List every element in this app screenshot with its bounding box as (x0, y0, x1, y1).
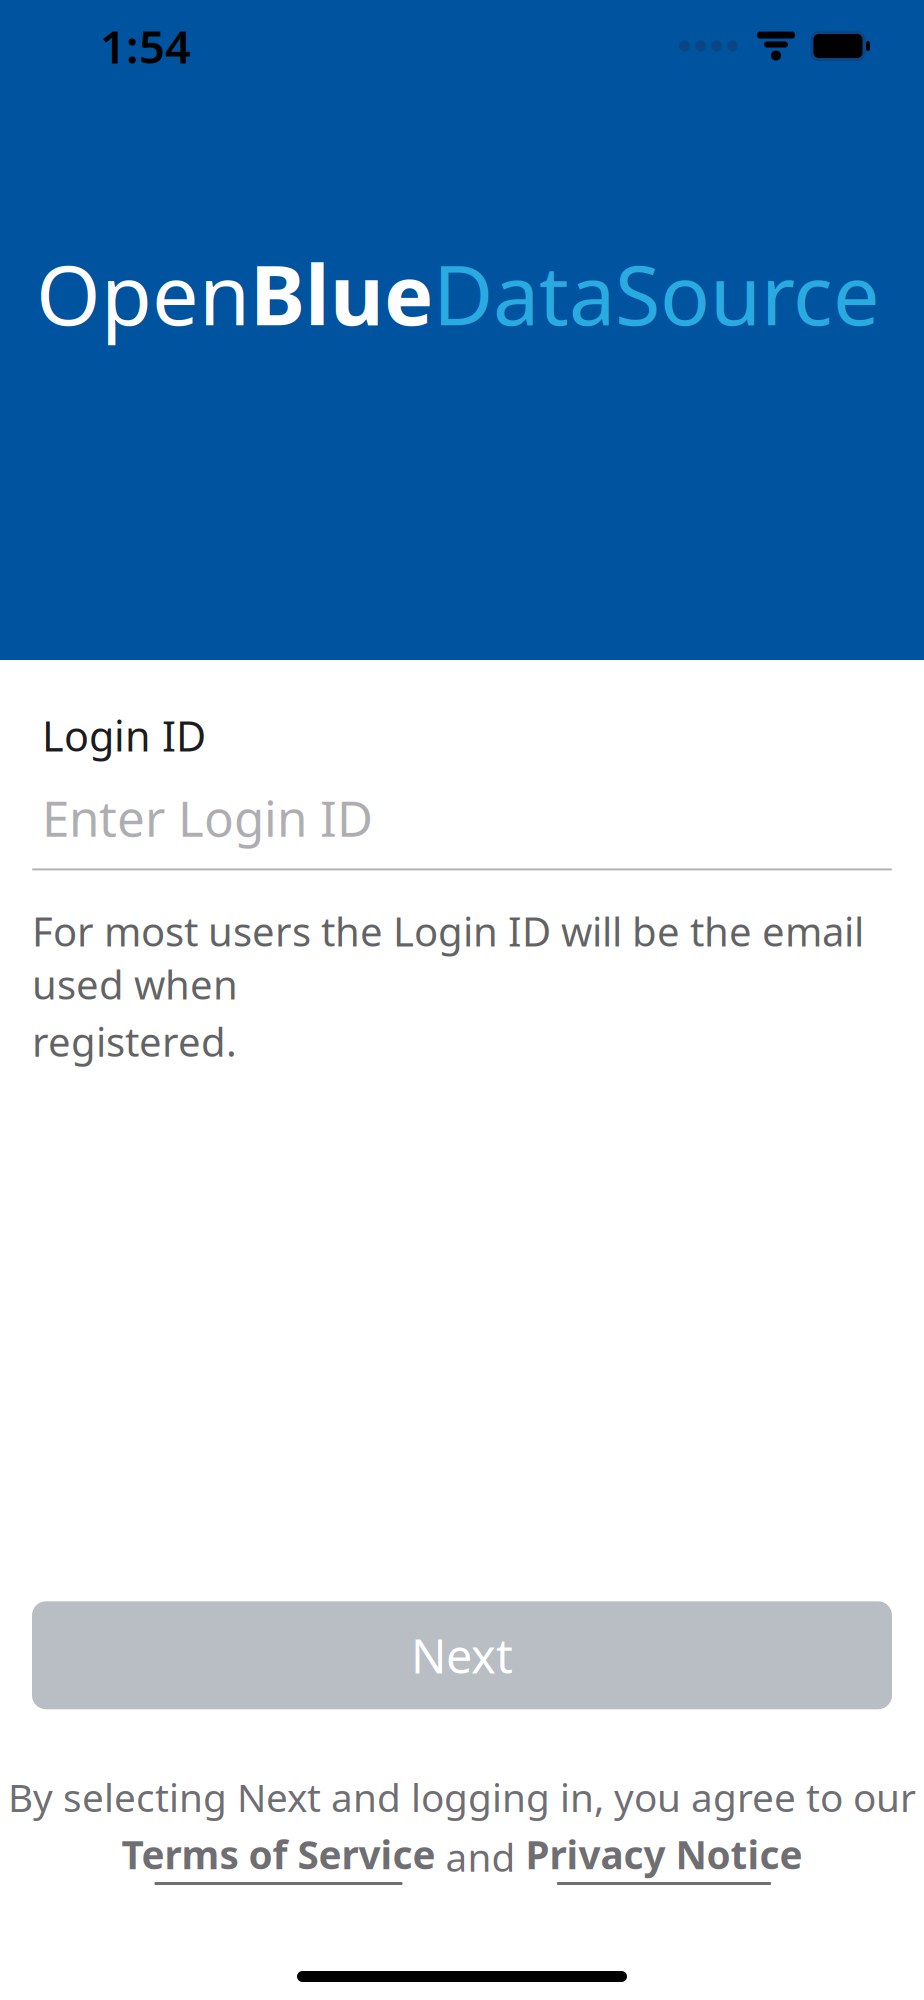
staticText: registered. (32, 1015, 237, 1068)
staticText: 1:54 (100, 16, 191, 76)
staticText: Enter Login ID (42, 785, 373, 850)
staticText: Open (36, 238, 250, 348)
staticText: Blue (250, 238, 433, 348)
staticText: Terms of Service (121, 1829, 435, 1880)
staticText: By selecting Next and logging in, you ag… (8, 1771, 916, 1823)
staticText: Privacy Notice (525, 1829, 802, 1880)
staticText: and (445, 1831, 515, 1882)
staticText: For most users the Login ID will be the … (32, 904, 864, 1011)
button[interactable]: Privacy Notice (525, 1829, 802, 1885)
button[interactable]: Next (32, 1601, 892, 1709)
button[interactable]: Enter Login ID (32, 785, 892, 870)
staticText: Next (411, 1624, 513, 1686)
staticText: DataSource (433, 238, 880, 348)
staticText: Login ID (42, 708, 206, 763)
button[interactable]: Terms of Service (121, 1829, 435, 1885)
